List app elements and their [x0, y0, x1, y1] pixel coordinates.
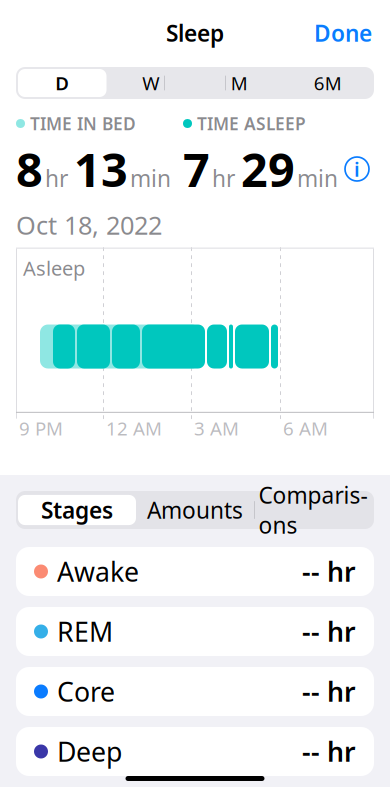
staticText: 29	[241, 138, 295, 200]
staticText: 7	[183, 138, 210, 200]
staticText: min	[130, 163, 171, 193]
staticText: Comparisons	[258, 480, 367, 540]
staticText: Done	[314, 18, 372, 48]
button[interactable]: Awake	[16, 547, 374, 596]
staticText: 6 AM	[283, 416, 328, 441]
button[interactable]: Deep	[16, 727, 374, 776]
staticText: Amounts	[147, 495, 243, 525]
staticText: Asleep	[23, 255, 85, 281]
staticText: Stages	[41, 495, 113, 525]
staticText: 8	[16, 138, 43, 200]
staticText: i	[354, 156, 360, 182]
staticText: W	[142, 71, 159, 95]
button[interactable]: D	[18, 69, 106, 97]
staticText: 12 AM	[106, 416, 162, 441]
staticText: TIME ASLEEP	[197, 112, 306, 135]
button[interactable]: W	[106, 69, 195, 97]
button[interactable]: Core	[16, 667, 374, 716]
staticText: 3 AM	[194, 416, 239, 441]
staticText: hr	[212, 163, 235, 193]
button[interactable]: About sleep data	[340, 152, 374, 186]
staticText: 6M	[314, 71, 342, 95]
staticText: TIME IN BED	[30, 112, 136, 135]
button[interactable]: Stages	[18, 496, 136, 524]
staticText: 13	[74, 138, 128, 200]
button[interactable]: Amounts	[136, 496, 254, 524]
button[interactable]: REM	[16, 607, 374, 656]
button[interactable]: Comparisons	[254, 496, 372, 524]
staticText: -- hr	[302, 614, 356, 649]
staticText: Core	[57, 674, 115, 709]
staticText: -- hr	[302, 554, 356, 589]
button[interactable]: 6M	[283, 69, 372, 97]
staticText: min	[297, 163, 338, 193]
staticText: REM	[57, 614, 113, 649]
staticText: Sleep	[166, 18, 224, 48]
staticText: Oct 18, 2022	[16, 208, 162, 242]
staticText: -- hr	[302, 734, 356, 769]
staticText: M	[231, 71, 248, 95]
staticText: Deep	[57, 734, 122, 769]
staticText: D	[55, 71, 69, 95]
button[interactable]: Done	[300, 9, 386, 57]
staticText: Awake	[57, 554, 139, 589]
staticText: -- hr	[302, 674, 356, 709]
staticText: 9 PM	[19, 416, 63, 441]
staticText: hr	[45, 163, 68, 193]
button[interactable]: M	[195, 69, 283, 97]
